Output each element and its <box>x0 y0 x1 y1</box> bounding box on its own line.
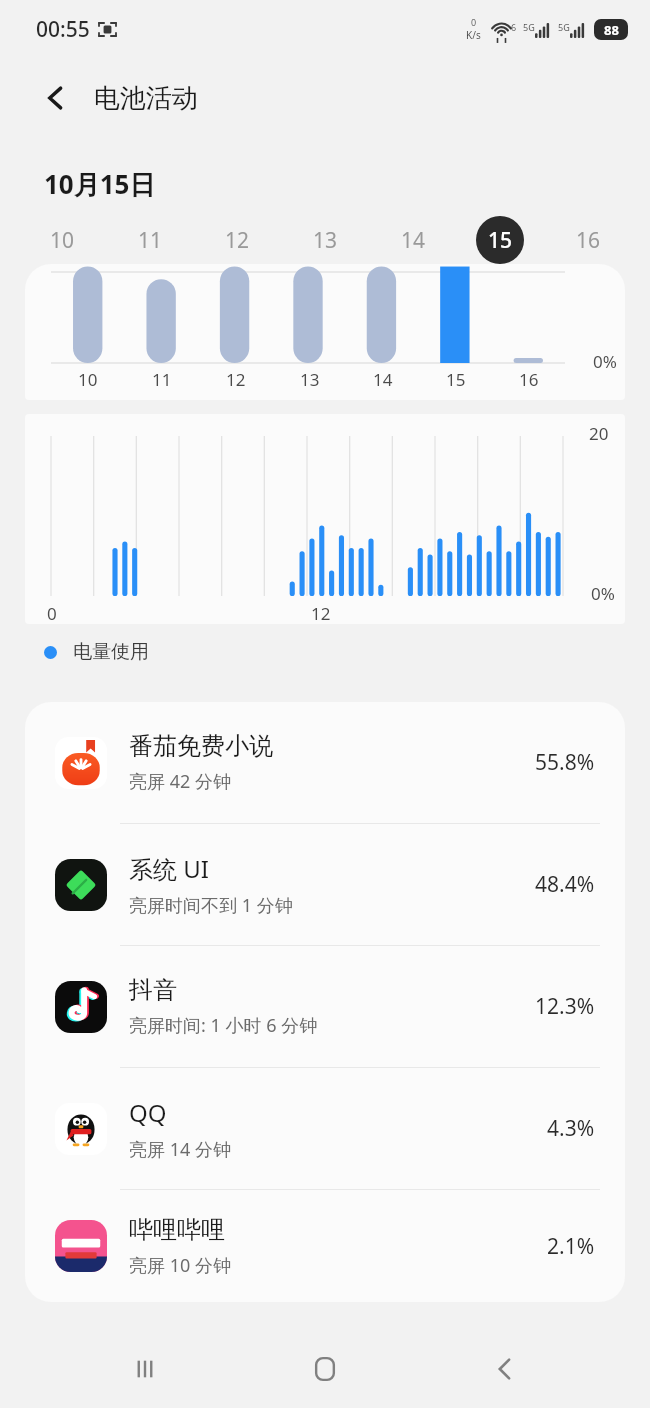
staticText: 11 <box>138 226 163 255</box>
staticText: 16 <box>576 226 601 255</box>
staticText: 番茄免费小说 <box>129 731 273 761</box>
staticText: 00:55 <box>36 15 90 44</box>
button[interactable]: 15 <box>463 216 537 264</box>
staticText: 亮屏时间: 1 小时 6 分钟 <box>129 1013 318 1038</box>
staticText: 20 <box>589 422 609 445</box>
staticText: 电量使用 <box>73 640 149 664</box>
staticText: 10 <box>50 226 75 255</box>
staticText: 88 <box>604 21 619 39</box>
staticText: 15 <box>446 368 466 391</box>
staticText: 13 <box>300 368 320 391</box>
staticText: 2.1% <box>547 1232 595 1261</box>
button[interactable]: 10 <box>25 216 99 264</box>
staticText: 亮屏 42 分钟 <box>129 769 231 794</box>
staticText: 10 <box>78 368 98 391</box>
staticText: QQ <box>129 1096 167 1129</box>
button[interactable]: QQ <box>25 1068 625 1189</box>
button[interactable]: 13 <box>288 216 362 264</box>
staticText: 12 <box>311 602 331 624</box>
staticText: 14 <box>401 226 426 255</box>
button[interactable]: Home <box>290 1334 360 1404</box>
staticText: 哔哩哔哩 <box>129 1215 225 1245</box>
button[interactable]: 12 <box>200 216 274 264</box>
staticText: 亮屏 10 分钟 <box>129 1253 231 1278</box>
staticText: 10月15日 <box>44 166 156 202</box>
button[interactable]: Back <box>470 1334 540 1404</box>
staticText: 15 <box>488 226 513 255</box>
staticText: K/s <box>466 28 481 42</box>
staticText: 48.4% <box>535 870 595 899</box>
staticText: 电池活动 <box>94 82 198 115</box>
staticText: 55.8% <box>535 748 595 777</box>
staticText: 11 <box>152 368 172 391</box>
staticText: 5G <box>523 21 535 33</box>
staticText: 亮屏 14 分钟 <box>129 1137 231 1162</box>
staticText: 抖音 <box>129 975 177 1005</box>
staticText: 0 <box>471 16 477 28</box>
staticText: 4.3% <box>547 1114 595 1143</box>
staticText: 系统 UI <box>129 852 209 885</box>
staticText: 14 <box>373 368 393 391</box>
button[interactable]: 抖音 <box>25 946 625 1067</box>
button[interactable]: 14 <box>376 216 450 264</box>
staticText: 6 <box>511 21 517 33</box>
staticText: 12 <box>225 226 250 255</box>
staticText: 13 <box>313 226 338 255</box>
staticText: 5G <box>558 21 570 33</box>
staticText: 亮屏时间不到 1 分钟 <box>129 893 293 918</box>
button[interactable]: 系统 UI <box>25 824 625 945</box>
staticText: 16 <box>519 368 539 391</box>
button[interactable]: 哔哩哔哩 <box>25 1190 625 1302</box>
button[interactable]: Back <box>34 76 78 120</box>
staticText: 0 <box>47 602 57 624</box>
staticText: 0% <box>591 582 615 605</box>
button[interactable]: Recents <box>110 1334 180 1404</box>
staticText: 12.3% <box>535 992 595 1021</box>
staticText: 0% <box>593 350 617 373</box>
button[interactable]: 11 <box>113 216 187 264</box>
staticText: 12 <box>226 368 246 391</box>
button[interactable]: 番茄免费小说 <box>25 702 625 823</box>
button[interactable]: 16 <box>551 216 625 264</box>
